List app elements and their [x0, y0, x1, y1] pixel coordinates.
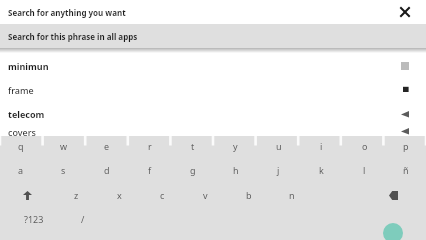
staticText: v	[203, 189, 208, 201]
button[interactable]: k	[300, 158, 343, 182]
button[interactable]: w	[42, 134, 85, 158]
button[interactable]: z	[55, 183, 98, 207]
staticText: Search for this phrase in all apps	[8, 31, 138, 42]
staticText: x	[117, 189, 122, 201]
staticText: frame	[8, 84, 394, 96]
staticText: y	[233, 140, 238, 152]
staticText: o	[362, 140, 368, 152]
button[interactable]: o	[343, 134, 386, 158]
button[interactable]: u	[257, 134, 300, 158]
staticText: i	[320, 140, 323, 152]
staticText: p	[403, 140, 409, 152]
staticText: ñ	[403, 164, 409, 176]
button[interactable]: a	[0, 158, 42, 182]
staticText: z	[74, 189, 79, 201]
button[interactable]: h	[214, 158, 257, 182]
button[interactable]: Search for anything you want	[0, 0, 426, 24]
staticText: r	[148, 140, 152, 152]
button[interactable]: q	[0, 134, 42, 158]
button[interactable]: Insert suggestion	[394, 126, 416, 136]
button[interactable]: frame	[0, 78, 426, 102]
staticText: /	[81, 213, 85, 225]
staticText: minimun	[8, 60, 394, 72]
button[interactable]: f	[128, 158, 171, 182]
button[interactable]: Insert suggestion	[394, 78, 416, 102]
staticText: n	[289, 189, 295, 201]
button[interactable]: s	[42, 158, 85, 182]
staticText: j	[277, 164, 280, 176]
button[interactable]: Insert suggestion	[394, 54, 416, 78]
button[interactable]: v	[184, 183, 227, 207]
button[interactable]: e	[85, 134, 128, 158]
button[interactable]: l	[343, 158, 386, 182]
staticText: k	[319, 164, 324, 176]
button[interactable]: r	[128, 134, 171, 158]
staticText: u	[276, 140, 282, 152]
button[interactable]: c	[141, 183, 184, 207]
button[interactable]: telecom	[0, 102, 426, 126]
staticText: g	[190, 164, 196, 176]
staticText: telecom	[8, 108, 394, 120]
button[interactable]: y	[214, 134, 257, 158]
staticText: Search for anything you want	[8, 7, 394, 18]
staticText: ?123	[24, 213, 44, 225]
staticText: t	[191, 140, 195, 152]
staticText: s	[61, 164, 66, 176]
button[interactable]: n	[270, 183, 313, 207]
button[interactable]: b	[227, 183, 270, 207]
staticText: h	[233, 164, 239, 176]
staticText: b	[246, 189, 252, 201]
button[interactable]: x	[98, 183, 141, 207]
staticText: w	[60, 140, 68, 152]
button[interactable]: minimun	[0, 54, 426, 78]
button[interactable]: p	[386, 134, 425, 158]
button[interactable]: Clear search	[394, 0, 416, 24]
button[interactable]: Search	[371, 207, 426, 231]
staticText: a	[18, 164, 24, 176]
button[interactable]: covers	[0, 126, 426, 136]
staticText: covers	[8, 126, 394, 136]
staticText: e	[104, 140, 110, 152]
button[interactable]: d	[85, 158, 128, 182]
button[interactable]: g	[171, 158, 214, 182]
button[interactable]: Backspace	[368, 183, 419, 207]
staticText: c	[160, 189, 165, 201]
staticText: l	[363, 164, 366, 176]
button[interactable]: ñ	[386, 158, 425, 182]
button[interactable]: j	[257, 158, 300, 182]
staticText: d	[104, 164, 110, 176]
button[interactable]: i	[300, 134, 343, 158]
button[interactable]: t	[171, 134, 214, 158]
staticText: f	[148, 164, 152, 176]
button[interactable]: Shift	[0, 183, 55, 207]
button[interactable]: ?123	[0, 207, 68, 231]
button[interactable]: /	[68, 207, 98, 231]
button[interactable]: Search for this phrase in all apps	[0, 24, 426, 48]
button[interactable]: Insert suggestion	[394, 102, 416, 126]
staticText: q	[18, 140, 24, 152]
